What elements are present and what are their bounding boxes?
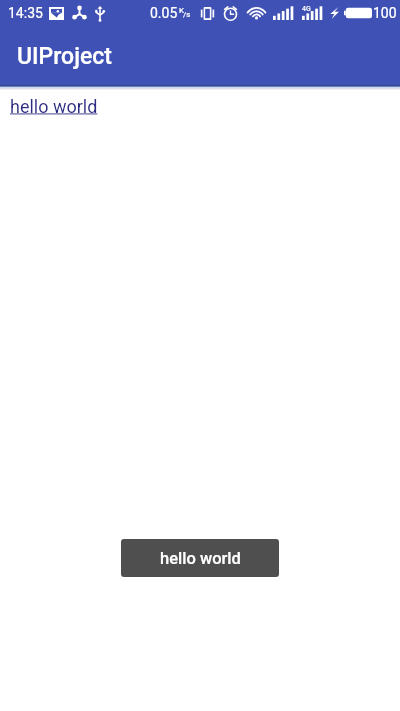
staticText: 4G xyxy=(302,5,311,13)
button[interactable]: hello world xyxy=(121,539,279,577)
other: Battery 100 percent xyxy=(344,6,372,20)
other: Vibrate xyxy=(201,6,214,21)
other: 4G signal xyxy=(302,6,324,20)
other: USB debugging xyxy=(72,6,87,20)
other: Screenshot xyxy=(49,7,64,20)
other: Alarm set xyxy=(223,6,238,21)
staticText: 100 xyxy=(373,5,397,21)
staticText: 14:35 xyxy=(8,5,43,21)
other: Charging xyxy=(330,7,339,19)
other: Signal xyxy=(273,6,295,20)
staticText: hello world xyxy=(160,549,241,568)
button[interactable]: hello world xyxy=(10,96,98,117)
staticText: K xyxy=(179,6,185,15)
staticText: /s xyxy=(183,10,191,19)
other: Wi-Fi xyxy=(248,6,265,20)
staticText: UIProject xyxy=(17,43,112,70)
staticText: 0.05 xyxy=(150,5,178,21)
other: USB connected xyxy=(95,6,105,21)
